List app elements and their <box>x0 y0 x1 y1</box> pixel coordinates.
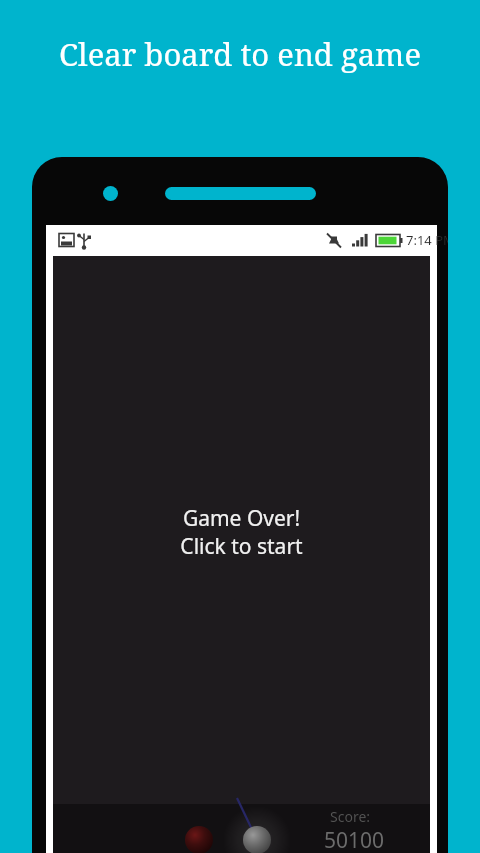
staticText: 50100 <box>324 826 385 853</box>
button[interactable]: Game Over! Click to start <box>53 256 430 853</box>
staticText: 7:14 PM <box>406 231 448 249</box>
staticText: Game Over! Click to start <box>53 504 430 560</box>
staticText: Score: <box>330 807 371 826</box>
staticText: Clear board to end game <box>0 33 480 75</box>
